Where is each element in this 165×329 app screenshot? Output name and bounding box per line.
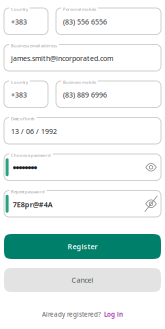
staticText: Register [67,242,97,251]
staticText: james.smith@incorporated.com [11,54,113,63]
staticText: Already registered? [42,310,101,318]
button[interactable]: Cancel [4,268,161,292]
button[interactable]: (83) 889 6996 [56,81,161,107]
button[interactable]: Show password [145,159,157,175]
button[interactable]: Register [4,234,161,259]
staticText: +383 [11,90,27,99]
staticText: Country [11,79,28,85]
staticText: 13 / 06 / 1992 [11,127,57,136]
staticText: (83) 556 6556 [63,17,107,26]
button[interactable]: 7E8pr@#4A [4,190,161,217]
staticText: Business mobile [63,79,96,85]
button[interactable]: james.smith@incorporated.com [4,44,161,71]
staticText: Choose a password [11,152,51,158]
staticText: (83) 889 6996 [63,90,107,99]
staticText: Personal mobile [63,6,96,12]
button[interactable]: (83) 556 6556 [56,8,161,34]
staticText: Repeat password [11,189,45,194]
staticText: ●●●●●●●● [13,165,37,170]
button[interactable]: Hide password [145,195,157,212]
button[interactable]: +383 [4,81,48,107]
button[interactable]: +383 [4,8,48,34]
staticText: Cancel [71,275,93,285]
staticText: Country [11,6,28,12]
button[interactable]: Log in [104,310,123,318]
button[interactable]: ●●●●●●●● [4,154,161,180]
staticText: 7E8pr@#4A [13,199,53,209]
staticText: Business email address [11,43,57,48]
staticText: Date of birth [11,116,35,121]
button[interactable]: 13 / 06 / 1992 [4,117,161,144]
staticText: Log in [104,310,123,318]
staticText: +383 [11,17,27,26]
